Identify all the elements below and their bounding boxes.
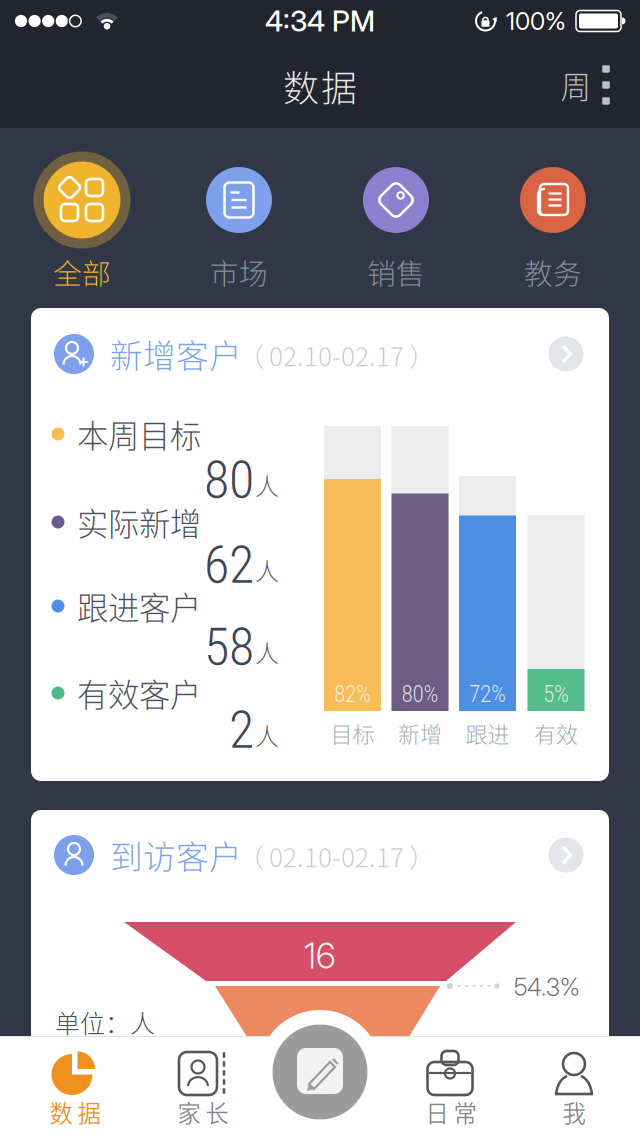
button[interactable]: 市场	[186, 147, 292, 293]
staticText: 人	[255, 552, 279, 587]
staticText: 有效客户	[77, 670, 201, 716]
staticText: 5%	[543, 680, 569, 708]
staticText: 单位：人	[55, 1004, 155, 1040]
button[interactable]: 写记录	[260, 1012, 380, 1132]
staticText: （ 02.10-02.17 ）	[238, 837, 435, 875]
staticText: 我	[562, 1095, 585, 1129]
staticText: 82%	[334, 680, 371, 708]
staticText: 58	[204, 616, 254, 677]
button[interactable]: 销售	[343, 147, 449, 293]
staticText: 教务	[524, 251, 582, 293]
button[interactable]: 全部	[29, 147, 135, 293]
staticText: 80	[204, 449, 254, 510]
staticText: 人	[255, 467, 279, 502]
staticText: 市场	[210, 251, 268, 293]
staticText: 到访客户	[110, 831, 242, 879]
button[interactable]: 数 据	[15, 1036, 135, 1136]
staticText: 4:34 PM	[265, 4, 375, 38]
staticText: 销售	[367, 251, 425, 293]
staticText: 日 常	[425, 1095, 476, 1129]
staticText: 80%	[401, 680, 438, 708]
staticText: 54.3%	[514, 972, 580, 1001]
staticText: 跟进	[465, 717, 509, 749]
staticText: 跟进客户	[77, 583, 201, 629]
staticText: 本周目标	[77, 411, 201, 457]
button[interactable]: 日 常	[391, 1036, 511, 1136]
staticText: 62	[204, 534, 254, 595]
button[interactable]: 查看详情	[548, 336, 583, 371]
staticText: 2	[229, 699, 254, 760]
button[interactable]: 查看详情	[548, 837, 583, 872]
staticText: 人	[255, 634, 279, 669]
staticText: 实际新增	[77, 499, 201, 545]
staticText: 数 据	[49, 1095, 100, 1129]
button[interactable]: 按周筛选	[559, 60, 617, 110]
staticText: 家 长	[177, 1095, 228, 1129]
staticText: （ 02.10-02.17 ）	[238, 336, 435, 374]
staticText: 72%	[469, 680, 506, 708]
button[interactable]: 教务	[500, 147, 606, 293]
staticText: 数 据	[283, 60, 357, 112]
staticText: 全部	[53, 251, 111, 293]
staticText: 人	[255, 717, 279, 752]
staticText: 新增	[398, 717, 442, 749]
staticText: 目标	[330, 717, 374, 749]
staticText: 新增客户	[110, 330, 242, 378]
button[interactable]: 家 长	[143, 1036, 263, 1136]
staticText: 周	[560, 63, 591, 107]
staticText: 100%	[506, 6, 566, 36]
staticText: 有效	[534, 717, 578, 749]
staticText: 16	[304, 935, 336, 977]
button[interactable]: 我	[514, 1036, 634, 1136]
